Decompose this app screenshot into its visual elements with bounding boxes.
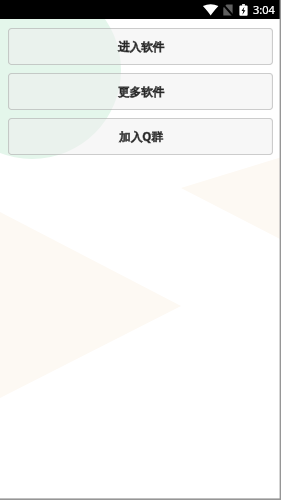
staticText: 加入Q群	[119, 129, 163, 145]
button[interactable]: 进入软件	[8, 28, 273, 65]
other: Status bar	[0, 0, 281, 19]
staticText: 进入软件	[118, 40, 164, 54]
button[interactable]: 加入Q群	[8, 118, 273, 155]
staticText: 进入软件	[118, 40, 164, 54]
staticText: 加入Q群	[119, 129, 163, 145]
staticText: 更多软件	[118, 85, 164, 99]
staticText: 3:04	[253, 2, 275, 17]
button[interactable]: 更多软件	[8, 73, 273, 110]
staticText: 更多软件	[118, 85, 164, 99]
